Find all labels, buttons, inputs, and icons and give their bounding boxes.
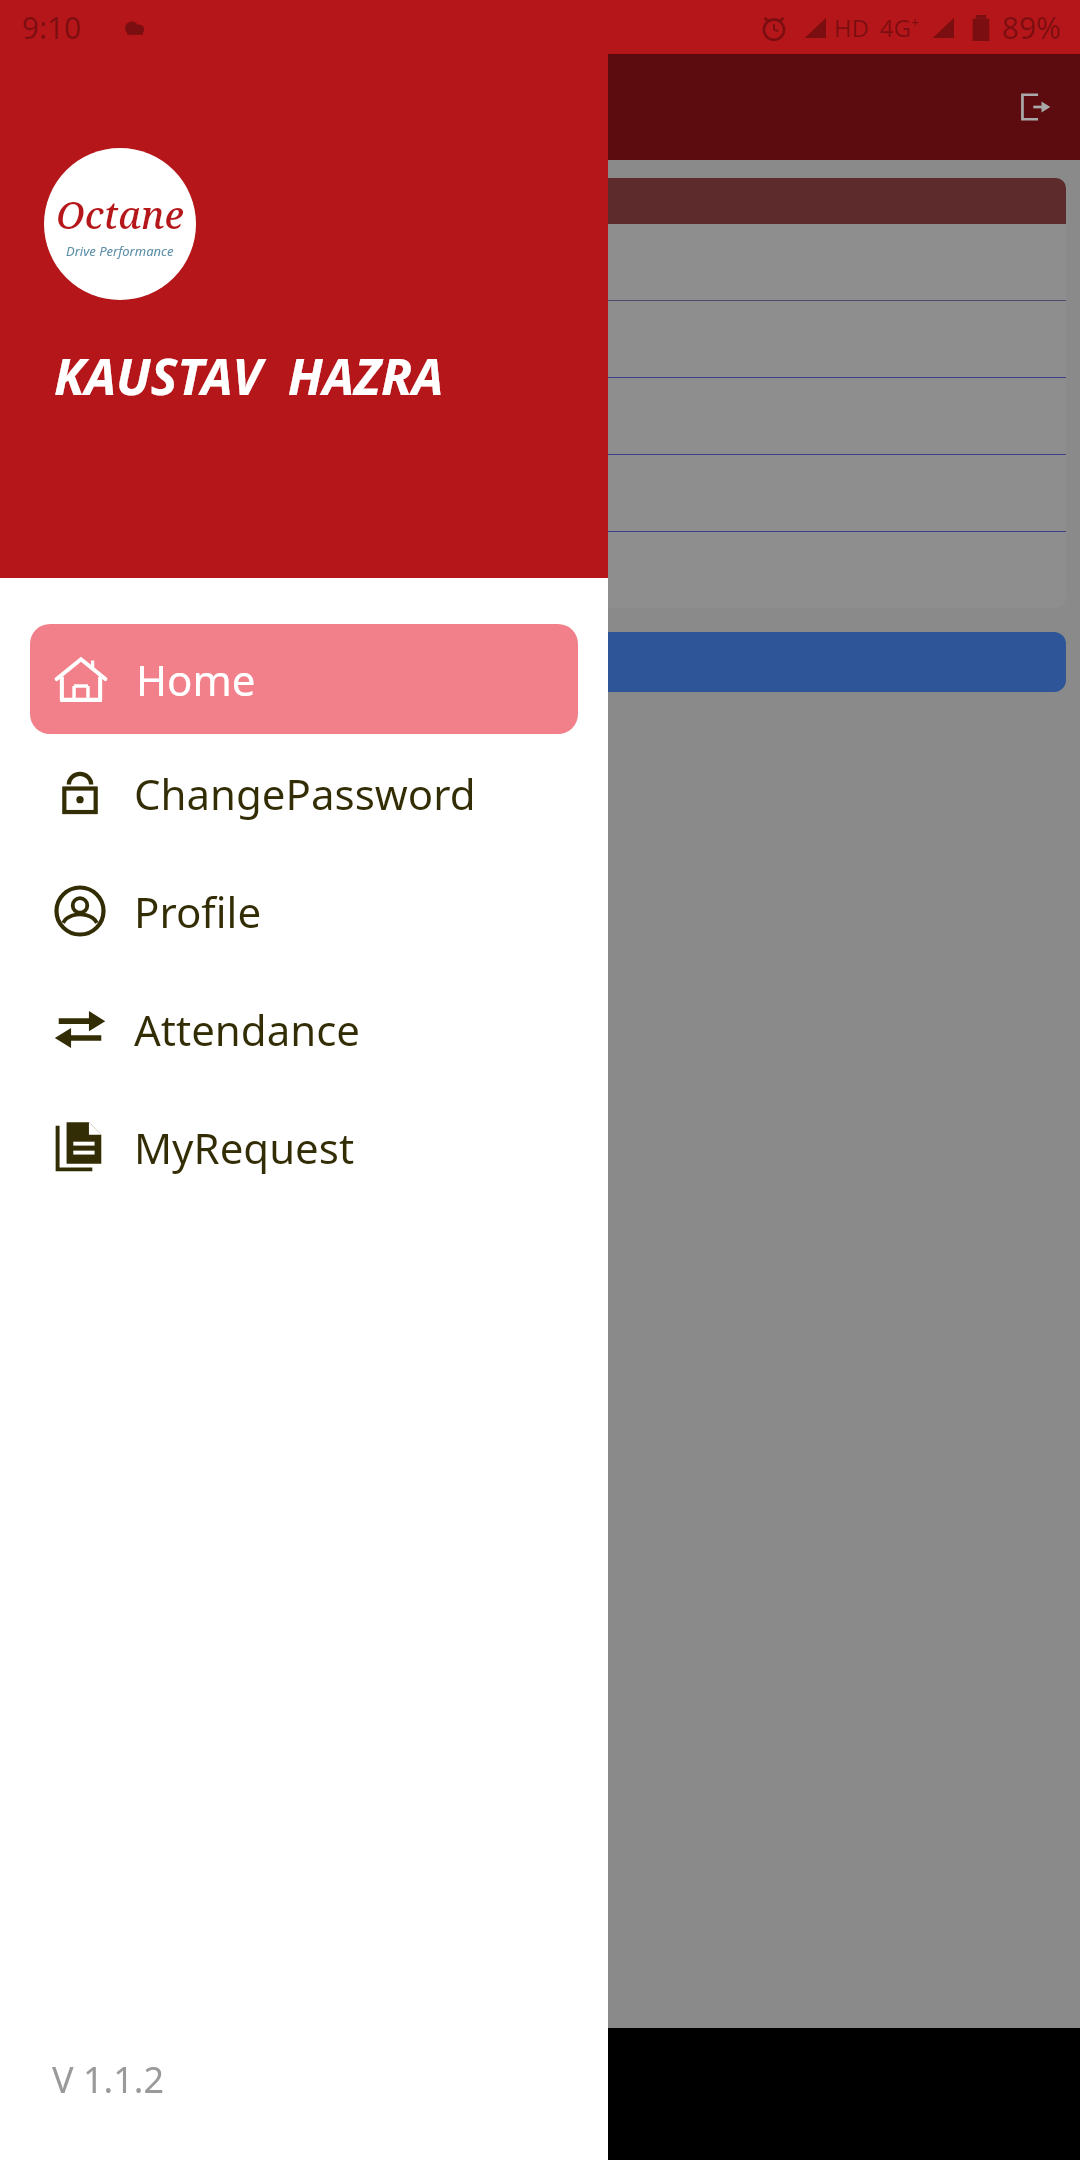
staticText: This Month LOP	[34, 642, 228, 677]
button[interactable]: Logout	[1012, 85, 1056, 129]
button[interactable]: Attendance	[30, 970, 578, 1088]
staticText: 89%	[1002, 7, 1062, 48]
staticText: Drive Performance	[66, 242, 174, 260]
staticText: KAUSTAV HAZRA	[54, 342, 444, 410]
button[interactable]: ChangePassword	[30, 734, 578, 852]
staticText: Requisition	[14, 782, 162, 820]
staticText: V 1.1.2	[52, 2055, 165, 2104]
staticText: Active	[32, 553, 106, 588]
staticText: MyRequest	[134, 1119, 355, 1176]
staticText: Home	[136, 651, 256, 708]
staticText: Octane	[56, 188, 184, 240]
button[interactable]: Profile	[30, 852, 578, 970]
staticText: KAUSTAV HAZRA	[32, 245, 233, 280]
staticText: ChangePassword	[134, 765, 476, 822]
button[interactable]: Home	[30, 624, 578, 734]
staticText: Profile	[134, 883, 262, 940]
button[interactable]: MyRequest	[30, 1088, 578, 1206]
staticText: Attendance	[134, 1001, 361, 1058]
staticText: 9:10	[22, 7, 82, 48]
staticText: HD	[834, 11, 870, 44]
staticText: 4G⁺	[880, 11, 920, 44]
